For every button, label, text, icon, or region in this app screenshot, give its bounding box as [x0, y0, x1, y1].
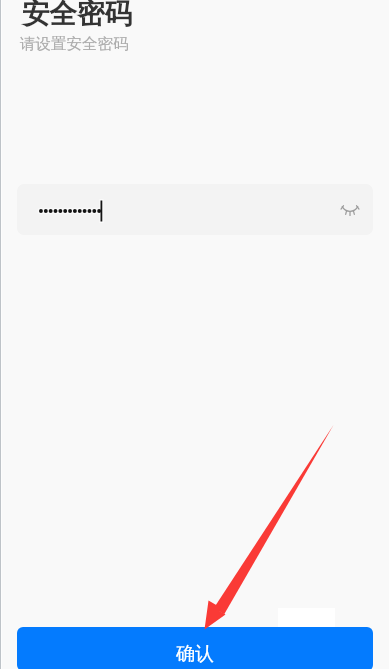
button[interactable]: 确认	[17, 627, 373, 669]
button[interactable]: Show password	[17, 184, 373, 235]
button[interactable]: Show password	[335, 195, 365, 225]
staticText: 安全密码	[22, 0, 132, 32]
staticText: 确认	[176, 642, 214, 666]
staticText: 请设置安全密码	[20, 34, 129, 54]
